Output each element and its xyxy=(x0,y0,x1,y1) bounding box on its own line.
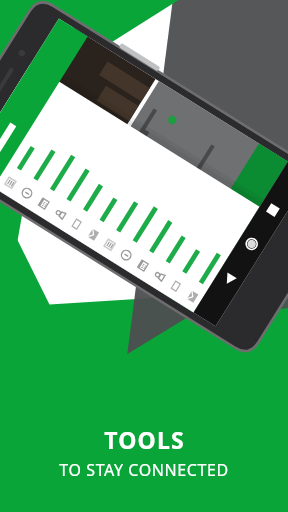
staticText: TO STAY CONNECTED xyxy=(59,459,229,481)
button[interactable]: App preview xyxy=(0,0,288,512)
staticText: TOOLS xyxy=(104,424,185,455)
